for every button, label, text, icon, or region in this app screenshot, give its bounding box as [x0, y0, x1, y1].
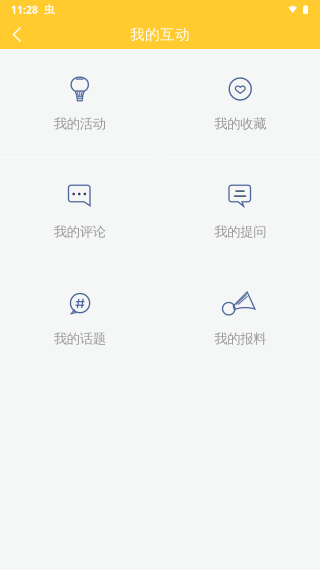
button[interactable]: 我的话题 [0, 266, 159, 371]
staticText: 11:28 [11, 2, 38, 17]
button[interactable]: 我的收藏 [160, 49, 320, 157]
staticText: 我的报料 [214, 331, 266, 347]
staticText: 我的活动 [54, 116, 106, 132]
button[interactable]: 我的评论 [0, 158, 159, 265]
staticText: 虫 [44, 3, 55, 16]
staticText: 我的提问 [214, 224, 266, 240]
staticText: 我的互动 [130, 25, 190, 43]
staticText: 我的评论 [54, 224, 106, 240]
button[interactable]: 我的提问 [160, 158, 320, 265]
button[interactable]: 我的报料 [160, 266, 320, 371]
button[interactable]: 我的活动 [0, 49, 159, 157]
staticText: 我的话题 [54, 331, 106, 347]
staticText: 我的收藏 [214, 116, 266, 132]
button[interactable]: Back [0, 20, 34, 49]
